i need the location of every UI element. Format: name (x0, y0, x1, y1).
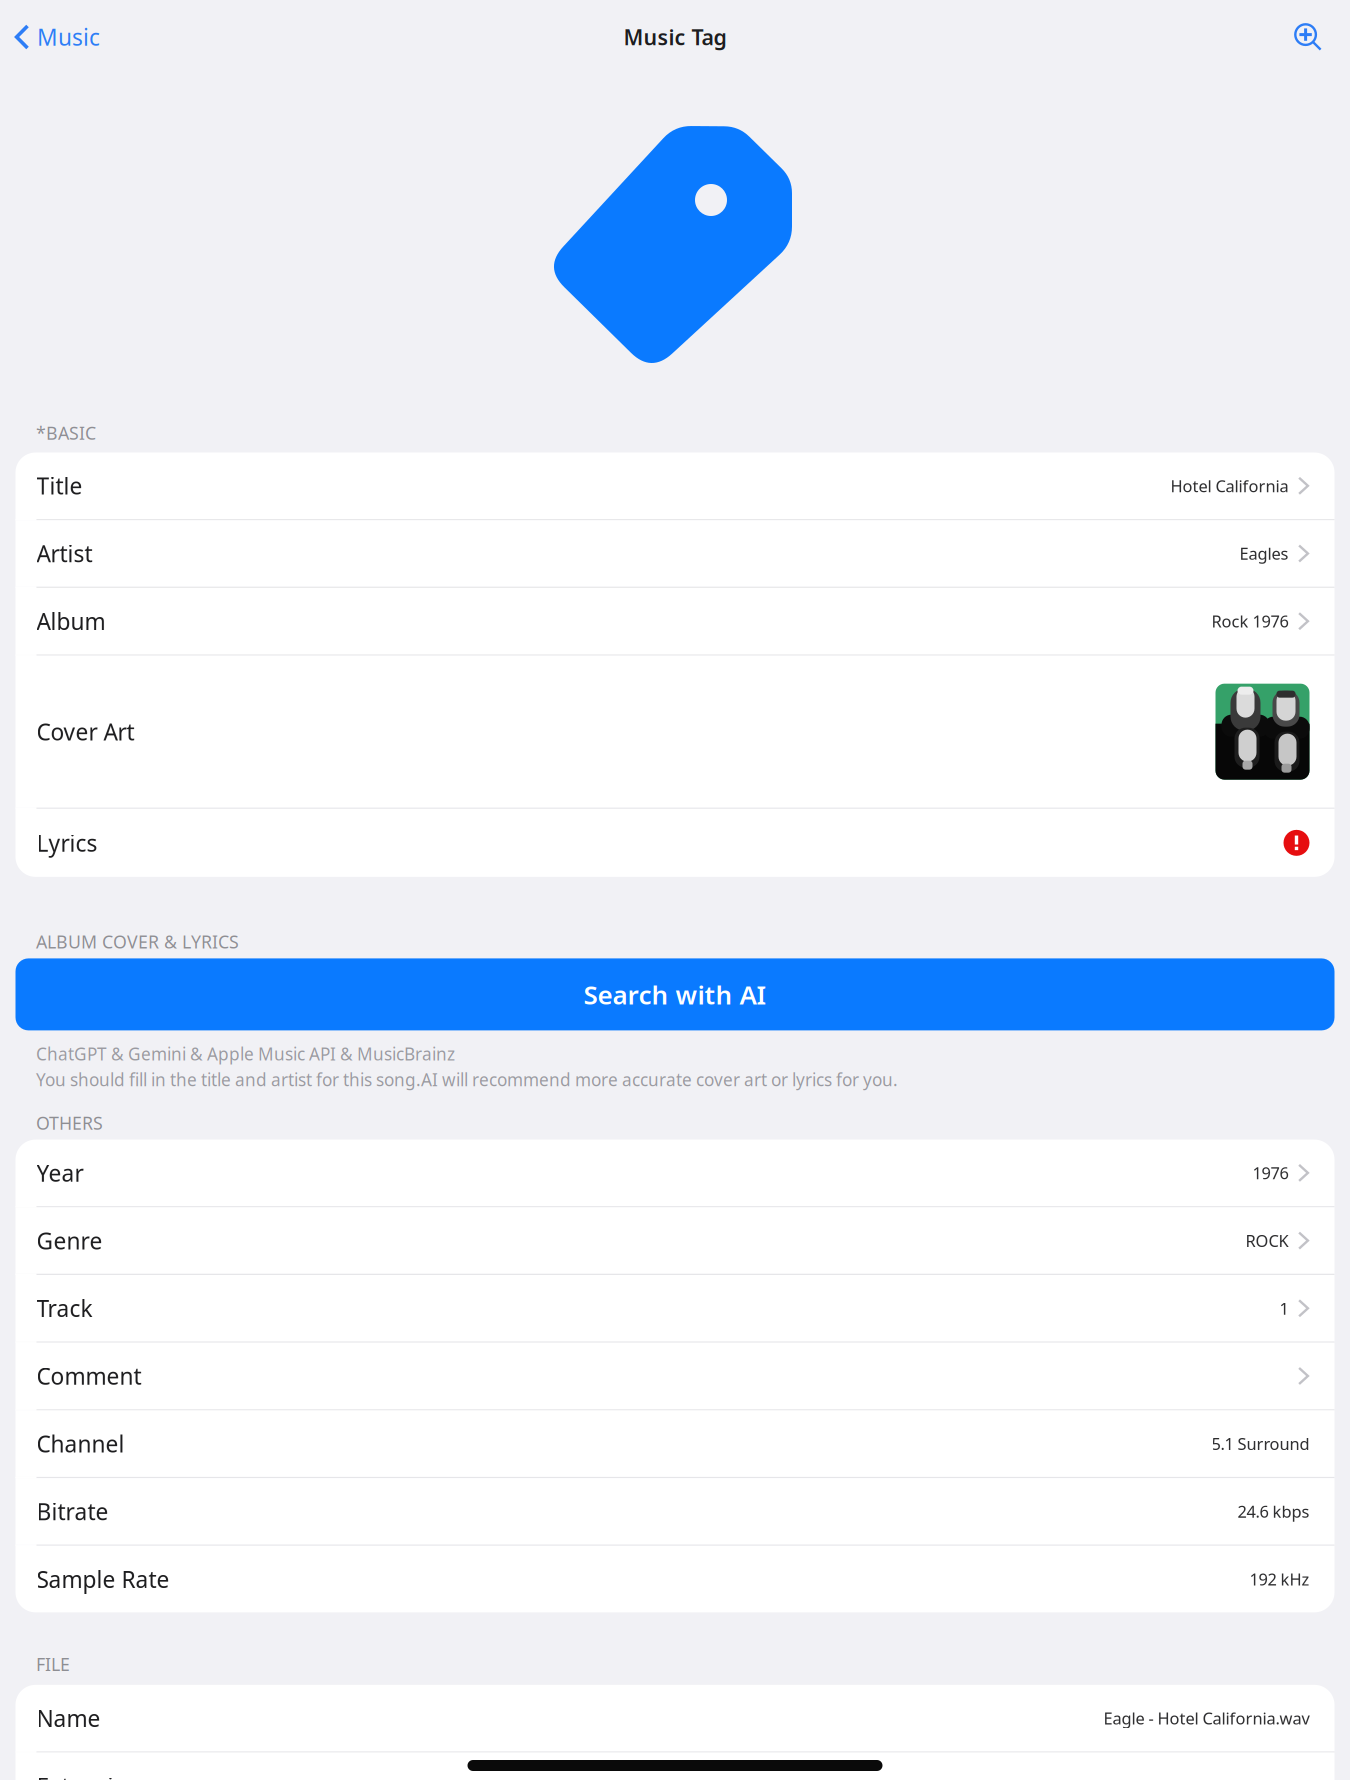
button[interactable]: Album (15, 588, 1334, 654)
staticText: 5.1 Surround (1211, 1433, 1309, 1455)
button[interactable]: Sample Rate (15, 1546, 1334, 1612)
staticText: Comment (36, 1361, 141, 1391)
staticText: You should fill in the title and artist … (36, 1068, 898, 1091)
staticText: Track (36, 1293, 92, 1323)
staticText: FILE (36, 1652, 70, 1676)
button[interactable]: Search (1278, 7, 1350, 67)
staticText: Cover Art (36, 717, 134, 747)
button[interactable]: Lyrics (15, 809, 1334, 877)
staticText: Hotel California (1170, 475, 1288, 497)
staticText: Title (36, 471, 82, 501)
button[interactable]: Year (15, 1140, 1334, 1206)
staticText: Extension (36, 1771, 141, 1780)
staticText: Artist (36, 538, 92, 568)
button[interactable]: Search with AI (15, 958, 1334, 1030)
staticText: *BASIC (36, 421, 96, 444)
button[interactable]: Comment (15, 1343, 1334, 1409)
staticText: Sample Rate (36, 1564, 169, 1594)
button[interactable]: Music (0, 7, 110, 67)
staticText: OTHERS (36, 1111, 103, 1135)
button[interactable]: Channel (15, 1410, 1334, 1477)
staticText: Music Tag (623, 23, 726, 51)
staticText: Lyrics (36, 828, 97, 858)
staticText: ChatGPT & Gemini & Apple Music API & Mus… (36, 1042, 455, 1065)
button[interactable]: Extension (15, 1753, 1334, 1780)
button[interactable]: Title (15, 452, 1334, 519)
staticText: Bitrate (36, 1496, 108, 1526)
staticText: Search with AI (583, 977, 766, 1012)
button[interactable]: Artist (15, 520, 1334, 587)
staticText: 1 (1279, 1297, 1288, 1319)
staticText: Rock 1976 (1211, 610, 1288, 632)
staticText: Genre (36, 1225, 102, 1256)
button[interactable]: Cover Art (15, 656, 1334, 808)
staticText: Year (36, 1158, 83, 1188)
staticText: Album (36, 606, 105, 636)
staticText: ROCK (1245, 1230, 1288, 1251)
staticText: Music (37, 22, 100, 52)
button[interactable]: Bitrate (15, 1478, 1334, 1545)
staticText: 1976 (1252, 1162, 1288, 1184)
button[interactable]: Genre (15, 1207, 1334, 1274)
staticText: Eagle - Hotel California.wav (1103, 1707, 1309, 1729)
staticText: 192 kHz (1249, 1568, 1309, 1590)
staticText: Channel (36, 1429, 124, 1459)
staticText: 24.6 kbps (1237, 1500, 1309, 1522)
button[interactable]: Name (15, 1685, 1334, 1751)
staticText: Eagles (1239, 543, 1288, 564)
staticText: Name (36, 1703, 100, 1733)
staticText: ALBUM COVER & LYRICS (36, 930, 239, 953)
button[interactable]: Track (15, 1275, 1334, 1341)
